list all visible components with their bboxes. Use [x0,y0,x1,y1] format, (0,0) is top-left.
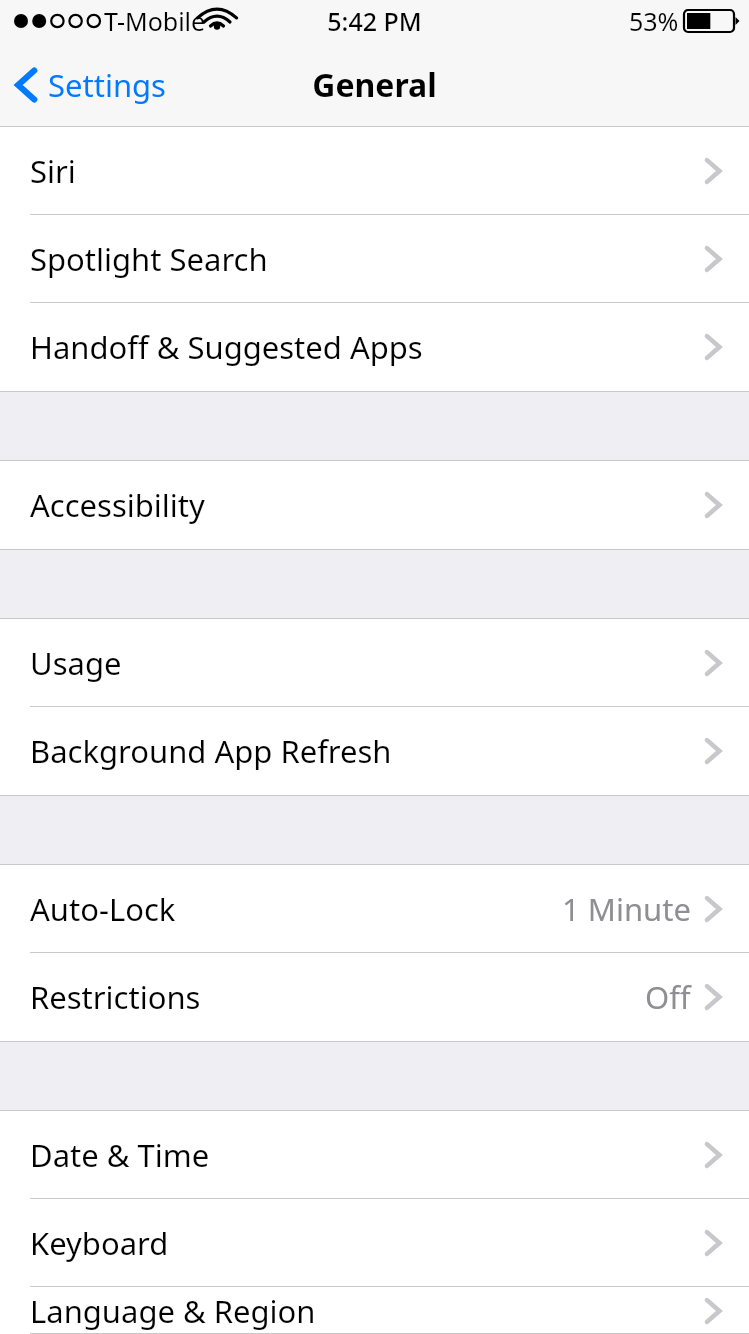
button[interactable]: Settings [0,56,180,114]
staticText: 5:42 PM [0,4,749,38]
staticText: General [0,63,749,107]
staticText: 1 Minute [562,888,691,930]
staticText: 53% [629,4,679,38]
staticText: Settings [48,64,166,106]
button[interactable]: Accessibility [0,461,749,549]
button[interactable]: Auto-Lock [0,865,749,953]
button[interactable]: Siri [0,127,749,215]
button[interactable]: Language & Region [0,1287,749,1334]
staticText: Spotlight Search [30,238,268,280]
staticText: Keyboard [30,1222,169,1264]
staticText: Accessibility [30,484,205,526]
staticText: Language & Region [30,1290,316,1332]
staticText: Siri [30,150,76,192]
button[interactable]: Date & Time [0,1111,749,1199]
staticText: Background App Refresh [30,730,392,772]
staticText: Restrictions [30,976,201,1018]
staticText: T-Mobile [104,4,206,38]
staticText: Auto-Lock [30,888,176,930]
button[interactable]: Keyboard [0,1199,749,1287]
button[interactable]: Spotlight Search [0,215,749,303]
staticText: Handoff & Suggested Apps [30,326,423,368]
button[interactable]: Handoff & Suggested Apps [0,303,749,391]
button[interactable]: Usage [0,619,749,707]
button[interactable]: Background App Refresh [0,707,749,795]
staticText: Date & Time [30,1134,210,1176]
button[interactable]: Restrictions [0,953,749,1041]
staticText: Usage [30,642,122,684]
staticText: Off [645,976,691,1018]
